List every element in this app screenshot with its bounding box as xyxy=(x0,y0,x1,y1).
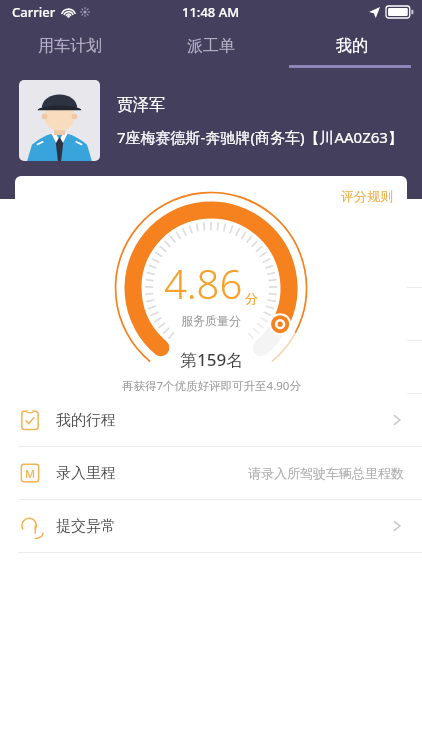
staticText: Carrier xyxy=(12,3,56,21)
staticText: 提交异常 xyxy=(56,517,116,536)
button[interactable]: 提交异常 xyxy=(0,500,422,553)
staticText: 用车计划 xyxy=(38,36,102,56)
staticText: M xyxy=(25,466,36,481)
other: 我的行程 xyxy=(390,413,404,427)
staticText: 服务质量分 xyxy=(181,313,241,328)
staticText: 贾泽军 xyxy=(117,95,165,115)
staticText: 11:48 AM xyxy=(182,3,240,21)
staticText: 再获得7个优质好评即可升至4.90分 xyxy=(122,378,301,394)
staticText: 我的 xyxy=(336,36,368,56)
staticText: 分 xyxy=(245,290,258,306)
button[interactable]: 评分规则 xyxy=(341,188,393,204)
button[interactable]: 我的行程 xyxy=(0,394,422,447)
button[interactable]: M xyxy=(0,447,422,500)
button[interactable]: 已绑定车辆 xyxy=(0,341,422,394)
button[interactable]: 我的评论 xyxy=(0,235,422,288)
staticText: 4.86 xyxy=(164,256,243,310)
staticText: 我的行程 xyxy=(56,411,116,430)
staticText: 评分规则 xyxy=(341,188,393,204)
staticText: 第159名 xyxy=(180,348,244,371)
button[interactable]: 我的 xyxy=(281,24,422,68)
staticText: 请录入所驾驶车辆总里程数 xyxy=(248,465,404,481)
other: 提交异常 xyxy=(390,519,404,533)
button[interactable]: 2 xyxy=(0,288,422,341)
button[interactable]: 用车计划 xyxy=(0,24,140,68)
staticText: 录入里程 xyxy=(56,464,116,483)
button[interactable]: 派工单 xyxy=(140,24,281,68)
staticText: 7座梅赛德斯-奔驰牌(商务车)【川AA0Z63】 xyxy=(117,127,403,147)
staticText: 派工单 xyxy=(187,36,235,56)
